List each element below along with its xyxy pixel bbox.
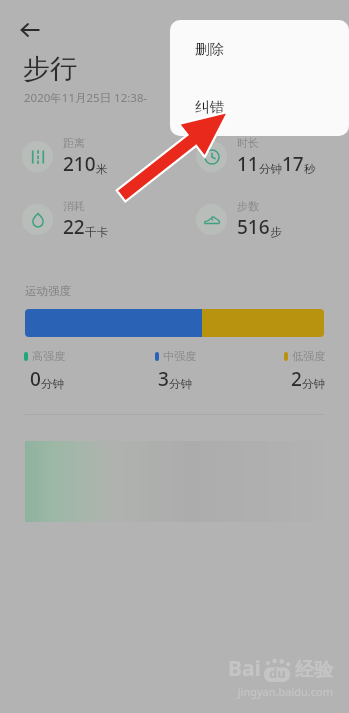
staticText: 516 <box>237 214 270 240</box>
button[interactable]: 步数 <box>196 199 349 240</box>
staticText: 11 <box>237 151 259 177</box>
staticText: 分钟 <box>259 162 282 176</box>
staticText: 删除 <box>195 40 224 58</box>
button[interactable]: 删除 <box>170 20 349 78</box>
staticText: 运动强度 <box>25 284 71 298</box>
staticText: 经验 <box>295 658 333 682</box>
staticText: 22 <box>63 214 85 240</box>
button[interactable]: 消耗 <box>22 199 174 240</box>
staticText: 步数 <box>237 199 259 213</box>
staticText: 分钟 <box>41 377 64 391</box>
staticText: 分钟 <box>169 377 192 391</box>
staticText: 高强度 <box>32 349 65 363</box>
staticText: jingyan.baidu.com <box>237 684 333 699</box>
staticText: 步行 <box>23 52 77 86</box>
staticText: 0 <box>30 366 41 392</box>
staticText: 分钟 <box>302 377 325 391</box>
staticText: 2 <box>291 366 302 392</box>
button[interactable]: Back <box>14 14 46 46</box>
staticText: 纠错 <box>195 98 224 116</box>
staticText: 210 <box>63 151 96 177</box>
staticText: 距离 <box>63 136 85 150</box>
staticText: du <box>269 664 286 682</box>
staticText: 步 <box>270 225 282 239</box>
staticText: 秒 <box>304 162 316 176</box>
staticText: 中强度 <box>163 349 196 363</box>
staticText: Bai <box>228 654 261 683</box>
button[interactable]: 距离 <box>22 136 174 177</box>
staticText: 米 <box>96 162 108 176</box>
button[interactable]: 时长 <box>196 136 349 177</box>
staticText: 消耗 <box>63 199 85 213</box>
staticText: 17 <box>282 151 304 177</box>
staticText: 千卡 <box>85 225 108 239</box>
button[interactable]: 纠错 <box>170 78 349 136</box>
staticText: 3 <box>158 366 169 392</box>
staticText: 时长 <box>237 136 259 150</box>
staticText: 2020年11月25日 12:38- <box>24 90 148 106</box>
staticText: 低强度 <box>292 349 325 363</box>
